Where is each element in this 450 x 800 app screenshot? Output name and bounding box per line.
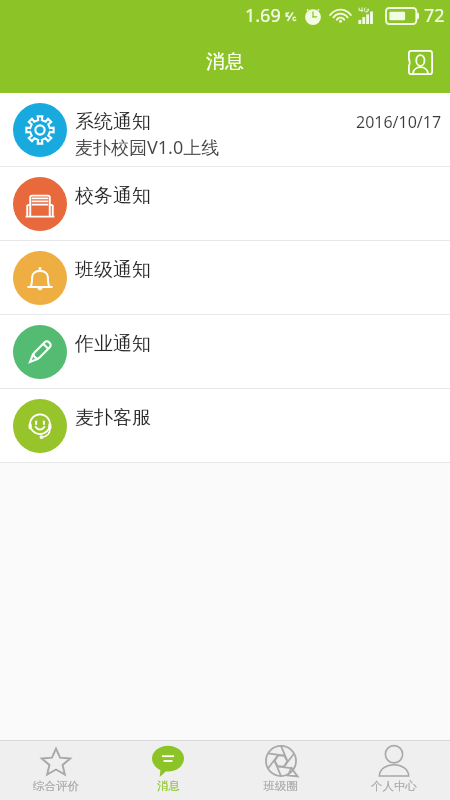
staticText: 2016/10/17 xyxy=(356,111,442,133)
staticText: 系统通知 xyxy=(75,110,151,134)
staticText: 麦扑校园V1.0上线 xyxy=(75,135,220,160)
staticText: 72 xyxy=(424,3,445,28)
button[interactable]: 系统通知 xyxy=(0,93,450,167)
button[interactable]: 综合评价 xyxy=(0,741,112,800)
button[interactable]: 消息 xyxy=(112,741,224,800)
staticText: 作业通知 xyxy=(75,332,151,356)
button[interactable]: Contacts xyxy=(398,40,442,84)
button[interactable]: 校务通知 xyxy=(0,167,450,241)
staticText: 个人中心 xyxy=(371,779,417,793)
staticText: 班级圈 xyxy=(263,779,298,793)
staticText: 综合评价 xyxy=(33,779,79,793)
button[interactable]: 班级通知 xyxy=(0,241,450,315)
staticText: 1.69 xyxy=(245,3,281,28)
staticText: 班级通知 xyxy=(75,258,151,282)
staticText: 消息 xyxy=(206,50,244,74)
button[interactable]: 麦扑客服 xyxy=(0,389,450,463)
button[interactable]: 个人中心 xyxy=(337,741,450,800)
staticText: 麦扑客服 xyxy=(75,406,151,430)
staticText: 消息 xyxy=(157,779,180,793)
button[interactable]: 班级圈 xyxy=(224,741,337,800)
button[interactable]: 作业通知 xyxy=(0,315,450,389)
staticText: 校务通知 xyxy=(75,184,151,208)
